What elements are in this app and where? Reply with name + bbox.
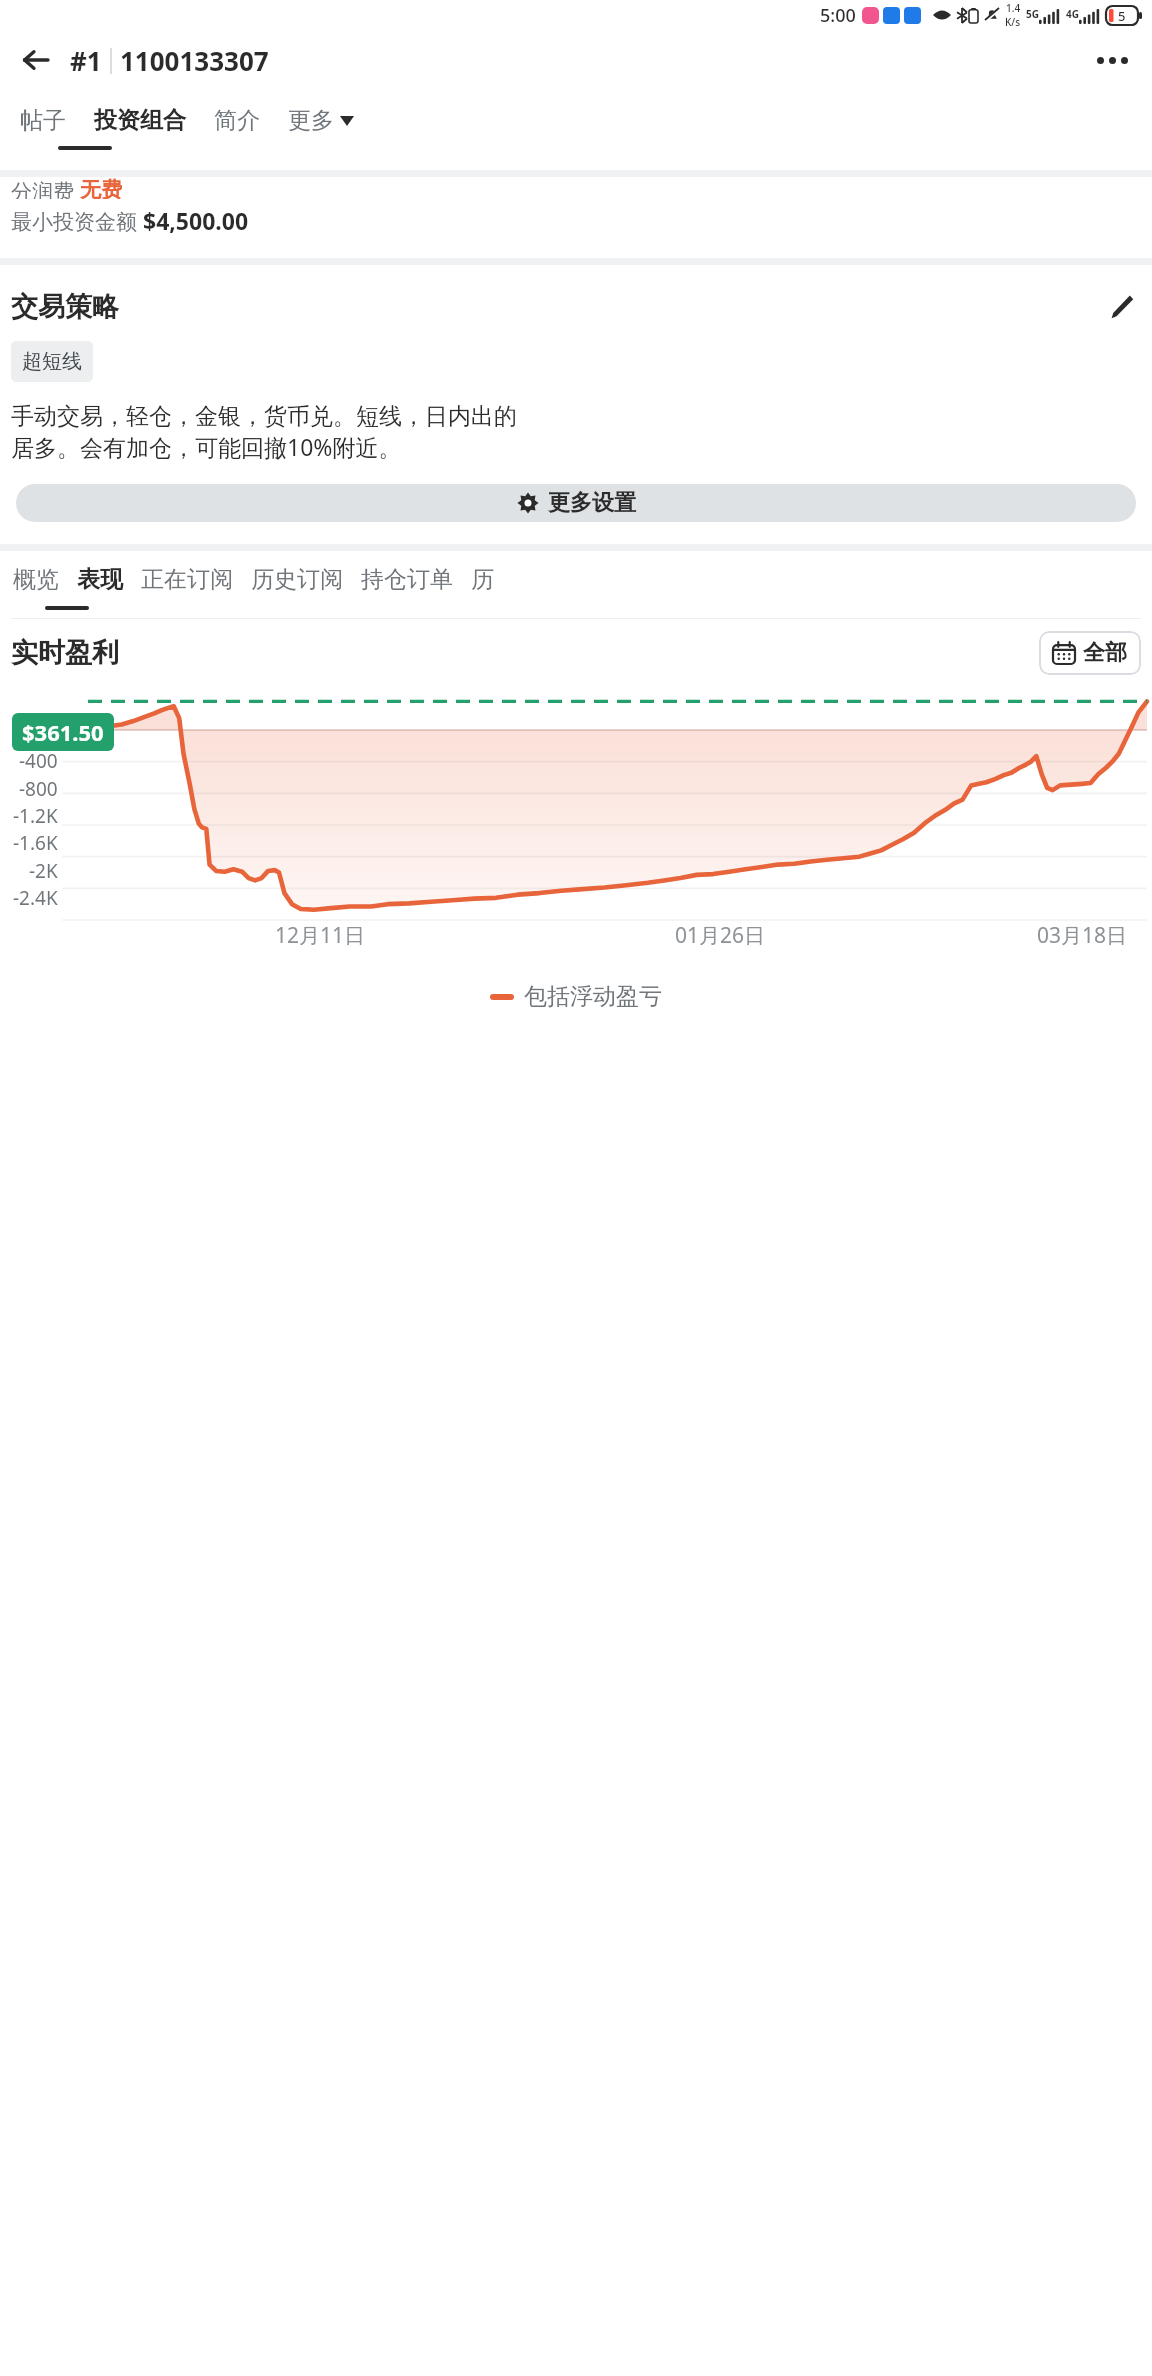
staticText: 01月26日 xyxy=(675,921,766,950)
staticText: 投资组合 xyxy=(94,106,186,135)
staticText: 全部 xyxy=(1083,639,1127,667)
staticText: 03月18日 xyxy=(1037,921,1128,950)
staticText: -400 xyxy=(19,748,58,774)
button[interactable]: 持仓订单 xyxy=(359,561,455,598)
staticText: 历史订阅 xyxy=(251,565,343,594)
staticText: -1.6K xyxy=(13,830,58,856)
staticText: 12月11日 xyxy=(275,921,366,950)
button[interactable]: 帖子 xyxy=(14,98,72,143)
button[interactable]: Edit strategy xyxy=(1101,287,1141,327)
button[interactable]: 更多 xyxy=(282,98,360,143)
button[interactable]: 历 xyxy=(469,561,496,598)
staticText: 5 xyxy=(1118,7,1126,25)
staticText: 手动交易，轻仓，金银，货币兑。短线，日内出的 xyxy=(11,402,517,431)
staticText: 表现 xyxy=(77,565,123,594)
staticText: 简介 xyxy=(214,106,260,135)
staticText: $361.50 xyxy=(22,717,104,747)
button[interactable]: 正在订阅 xyxy=(139,561,235,598)
staticText: 持仓订单 xyxy=(361,565,453,594)
staticText: -800 xyxy=(19,776,58,802)
staticText: #1 xyxy=(70,43,102,78)
staticText: 4G xyxy=(1066,7,1079,21)
button[interactable]: 全部 xyxy=(1039,631,1141,675)
staticText: 居多。会有加仓，可能回撤10%附近。 xyxy=(11,431,402,462)
staticText: 历 xyxy=(471,565,494,594)
staticText: -2.4K xyxy=(13,885,58,911)
staticText: 交易策略 xyxy=(11,290,119,324)
staticText: 实时盈利 xyxy=(11,636,119,670)
staticText: 更多 xyxy=(288,106,334,135)
staticText: 5G xyxy=(1026,7,1039,21)
staticText: 最小投资金额 xyxy=(11,207,143,236)
staticText: 5:00 xyxy=(820,3,856,28)
button[interactable]: 简介 xyxy=(208,98,266,143)
staticText: -1.2K xyxy=(13,803,58,829)
staticText: 0 xyxy=(47,721,58,747)
staticText: 更多设置 xyxy=(548,489,636,517)
staticText: 包括浮动盈亏 xyxy=(524,982,662,1011)
button[interactable]: 历史订阅 xyxy=(249,561,345,598)
staticText: 1100133307 xyxy=(120,43,269,78)
button[interactable]: Back xyxy=(10,34,62,86)
staticText: 1.4 xyxy=(1006,1,1021,15)
staticText: $4,500.00 xyxy=(143,205,249,236)
button[interactable]: 表现 xyxy=(75,561,125,598)
button[interactable]: More options xyxy=(1084,32,1140,88)
staticText: 无费 xyxy=(80,177,122,199)
staticText: 概览 xyxy=(13,565,59,594)
staticText: K/s xyxy=(1005,15,1021,29)
staticText: 超短线 xyxy=(22,349,82,374)
button[interactable]: 更多设置 xyxy=(16,484,1136,522)
staticText: 正在订阅 xyxy=(141,565,233,594)
button[interactable]: 概览 xyxy=(11,561,61,598)
staticText: 分润费 xyxy=(11,177,80,199)
staticText: 帖子 xyxy=(20,106,66,135)
button[interactable]: 投资组合 xyxy=(88,98,192,143)
staticText: -2K xyxy=(29,858,58,884)
